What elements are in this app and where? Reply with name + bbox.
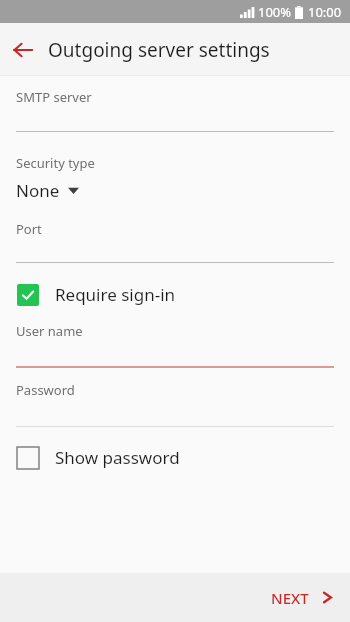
- button[interactable]: NEXT: [251, 573, 350, 622]
- staticText: User name: [16, 322, 83, 340]
- staticText: NEXT: [271, 588, 309, 608]
- staticText: Security type: [16, 154, 95, 172]
- staticText: Outgoing server settings: [48, 37, 270, 63]
- button[interactable]: Require sign-in: [0, 279, 350, 310]
- staticText: 10:00: [308, 3, 342, 21]
- staticText: Require sign-in: [55, 283, 176, 306]
- staticText: Port: [16, 220, 42, 238]
- button[interactable]: None: [0, 177, 350, 204]
- button[interactable]: Show password: [0, 442, 350, 473]
- staticText: Password: [16, 381, 75, 399]
- staticText: 100%: [258, 3, 292, 21]
- staticText: SMTP server: [16, 88, 92, 106]
- staticText: None: [16, 179, 60, 202]
- staticText: Show password: [55, 446, 180, 469]
- button[interactable]: Back: [0, 27, 46, 73]
